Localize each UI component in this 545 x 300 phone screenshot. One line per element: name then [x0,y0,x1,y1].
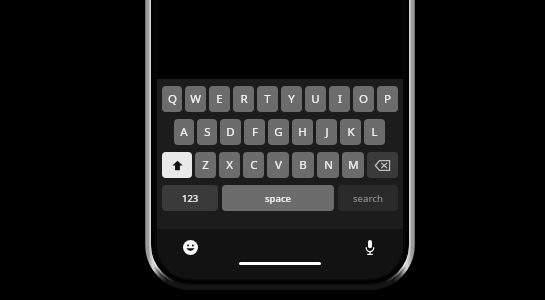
staticText: B [299,157,307,173]
button[interactable]: V [267,152,289,178]
staticText: 123 [182,192,199,205]
staticText: U [311,91,320,107]
button[interactable]: F [244,119,265,145]
staticText: C [250,157,258,173]
staticText: W [190,91,201,107]
staticText: T [264,91,271,107]
button[interactable]: Q [162,86,182,112]
button[interactable]: Backspace [367,152,398,178]
staticText: X [226,157,233,173]
staticText: space [265,192,292,205]
staticText: E [216,91,223,107]
button[interactable]: U [305,86,326,112]
button[interactable]: J [316,119,337,145]
button[interactable]: K [340,119,361,145]
button[interactable]: X [219,152,240,178]
button[interactable]: 123 [162,185,218,211]
button[interactable]: I [329,86,350,112]
button[interactable]: S [197,119,217,145]
button[interactable]: Y [281,86,302,112]
staticText: S [204,124,211,140]
staticText: Q [168,91,177,107]
staticText: A [180,124,188,140]
button[interactable]: D [220,119,241,145]
staticText: J [325,124,329,140]
button[interactable]: M [342,152,364,178]
staticText: N [324,157,333,173]
button[interactable]: R [233,86,254,112]
button[interactable]: C [243,152,264,178]
button[interactable]: G [268,119,289,145]
button[interactable]: search [338,185,398,211]
staticText: R [240,91,248,107]
staticText: H [298,124,307,140]
staticText: I [338,91,342,107]
button[interactable]: T [257,86,278,112]
button[interactable]: P [377,86,398,112]
staticText: D [226,124,235,140]
button[interactable]: E [209,86,230,112]
staticText: search [353,192,383,205]
button[interactable]: L [364,119,385,145]
staticText: K [347,124,355,140]
button[interactable]: Voice input [360,237,380,257]
button[interactable]: O [353,86,374,112]
staticText: M [348,157,359,173]
button[interactable]: space [222,185,334,211]
staticText: F [252,124,258,140]
button[interactable]: N [317,152,339,178]
staticText: V [275,157,282,173]
staticText: Y [288,91,295,107]
button[interactable]: Z [195,152,216,178]
staticText: O [359,91,368,107]
button[interactable]: W [185,86,206,112]
button[interactable]: B [292,152,314,178]
staticText: Z [202,157,209,173]
button[interactable]: Shift [162,152,192,178]
button[interactable]: A [174,119,194,145]
staticText: P [384,91,391,107]
button[interactable]: H [292,119,313,145]
button[interactable]: Emoji [180,237,200,257]
staticText: L [371,124,378,140]
staticText: G [274,124,283,140]
